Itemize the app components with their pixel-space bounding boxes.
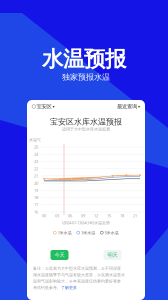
staticText: 18 [120, 213, 124, 218]
staticText: 12 [94, 213, 98, 218]
staticText: 备注：①此表为大中型水库水温预测，②不同深度 [33, 266, 121, 271]
button[interactable]: 今天 [50, 250, 68, 260]
staticText: 20 [34, 180, 38, 186]
staticText: 水温℃ [29, 137, 41, 142]
staticText: 独家预报水温 [62, 72, 110, 82]
staticText: 09 [81, 213, 85, 218]
staticText: 温和气温影响较大，④本表温度仅供垂钓爱好者参 [33, 279, 121, 284]
staticText: 17 [34, 202, 38, 207]
button[interactable]: 明天 [103, 250, 121, 260]
staticText: 最近查询 [117, 103, 137, 110]
staticText: 16 [34, 209, 38, 215]
staticText: ▾ [52, 104, 54, 109]
staticText: 21 [34, 173, 38, 178]
staticText: 23 [34, 159, 38, 164]
staticText: 00 [42, 213, 46, 218]
staticText: (2024-01-13)24小时水温走势 [62, 220, 110, 225]
staticText: 19 [34, 188, 38, 193]
staticText: 考供钓鱼参考。 [33, 285, 61, 290]
staticText: 22 [34, 166, 38, 171]
staticText: 21 [133, 213, 137, 218]
staticText: 25 [34, 144, 38, 150]
staticText: 3米水温 [81, 230, 95, 235]
staticText: 明天 [107, 252, 117, 258]
button[interactable]: 宝安区 [32, 103, 54, 110]
staticText: 06 [68, 213, 72, 218]
staticText: 03 [55, 213, 59, 218]
staticText: 1米水温 [58, 230, 72, 235]
button[interactable]: 最近查询 [117, 103, 140, 110]
staticText: 15 [107, 213, 111, 218]
staticText: 宝安区 [36, 103, 51, 110]
staticText: ▾ [138, 104, 140, 109]
staticText: 适用于大中型水库水温监测 [62, 127, 110, 132]
button[interactable]: 了解更多 [61, 285, 77, 290]
staticText: 24 [34, 152, 38, 157]
staticText: 水温预报 [42, 46, 126, 72]
staticText: 了解更多 [61, 285, 77, 290]
staticText: 宝安区水库水温预报 [50, 117, 122, 127]
staticText: 湖水温度随季节与气温有较大差异，③实测水温受水 [33, 272, 125, 277]
staticText: 今天 [54, 252, 64, 258]
staticText: 5米水温 [105, 230, 119, 235]
staticText: 18 [34, 195, 38, 200]
